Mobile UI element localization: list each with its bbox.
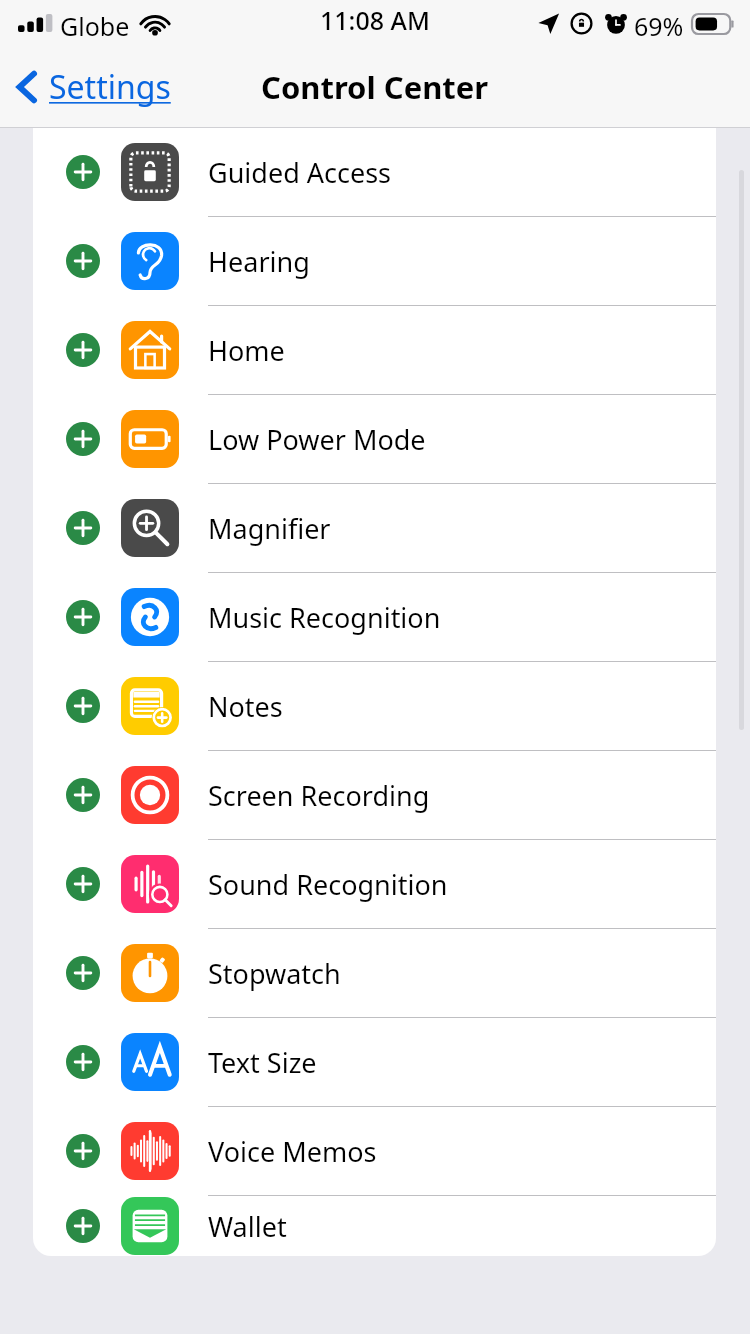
staticText: Low Power Mode bbox=[208, 421, 426, 458]
button[interactable]: Add Home bbox=[66, 333, 100, 367]
button[interactable]: Add Low Power Mode bbox=[66, 422, 100, 456]
staticText: Settings bbox=[49, 65, 171, 109]
button[interactable]: Add Stopwatch bbox=[66, 956, 100, 990]
button[interactable]: Add Guided Access bbox=[66, 155, 100, 189]
button[interactable]: Add Stopwatch bbox=[33, 929, 716, 1017]
button[interactable]: Add Screen Recording bbox=[66, 778, 100, 812]
staticText: 69% bbox=[634, 9, 684, 43]
button[interactable]: Add Text Size bbox=[66, 1045, 100, 1079]
staticText: Voice Memos bbox=[208, 1133, 377, 1170]
staticText: Stopwatch bbox=[208, 955, 341, 992]
button[interactable]: Add Magnifier bbox=[33, 484, 716, 572]
staticText: Sound Recognition bbox=[208, 866, 448, 903]
staticText: Hearing bbox=[208, 243, 310, 280]
button[interactable]: Settings bbox=[0, 59, 181, 115]
button[interactable]: Add Wallet bbox=[66, 1209, 100, 1243]
staticText: Wallet bbox=[208, 1208, 287, 1245]
button[interactable]: Add Hearing bbox=[33, 217, 716, 305]
staticText: Magnifier bbox=[208, 510, 331, 547]
staticText: 11:08 AM bbox=[320, 3, 430, 37]
button[interactable]: Add Screen Recording bbox=[33, 751, 716, 839]
button[interactable]: Add Guided Access bbox=[33, 128, 716, 216]
staticText: Control Center bbox=[261, 66, 489, 108]
staticText: Text Size bbox=[208, 1044, 317, 1081]
staticText: Screen Recording bbox=[208, 777, 430, 814]
button[interactable]: Add Text Size bbox=[33, 1018, 716, 1106]
button[interactable]: Add Voice Memos bbox=[66, 1134, 100, 1168]
staticText: Globe bbox=[60, 9, 130, 43]
button[interactable]: Add Wallet bbox=[33, 1196, 716, 1256]
staticText: Notes bbox=[208, 688, 283, 725]
button[interactable]: Add Magnifier bbox=[66, 511, 100, 545]
button[interactable]: Add Sound Recognition bbox=[33, 840, 716, 928]
staticText: Music Recognition bbox=[208, 599, 441, 636]
button[interactable]: Add Notes bbox=[33, 662, 716, 750]
button[interactable]: Add Low Power Mode bbox=[33, 395, 716, 483]
button[interactable]: Add Music Recognition bbox=[33, 573, 716, 661]
button[interactable]: Add Sound Recognition bbox=[66, 867, 100, 901]
button[interactable]: Add Music Recognition bbox=[66, 600, 100, 634]
staticText: Guided Access bbox=[208, 154, 392, 191]
button[interactable]: Add Home bbox=[33, 306, 716, 394]
button[interactable]: Add Voice Memos bbox=[33, 1107, 716, 1195]
staticText: Home bbox=[208, 332, 285, 369]
button[interactable]: Add Notes bbox=[66, 689, 100, 723]
button[interactable]: Add Hearing bbox=[66, 244, 100, 278]
